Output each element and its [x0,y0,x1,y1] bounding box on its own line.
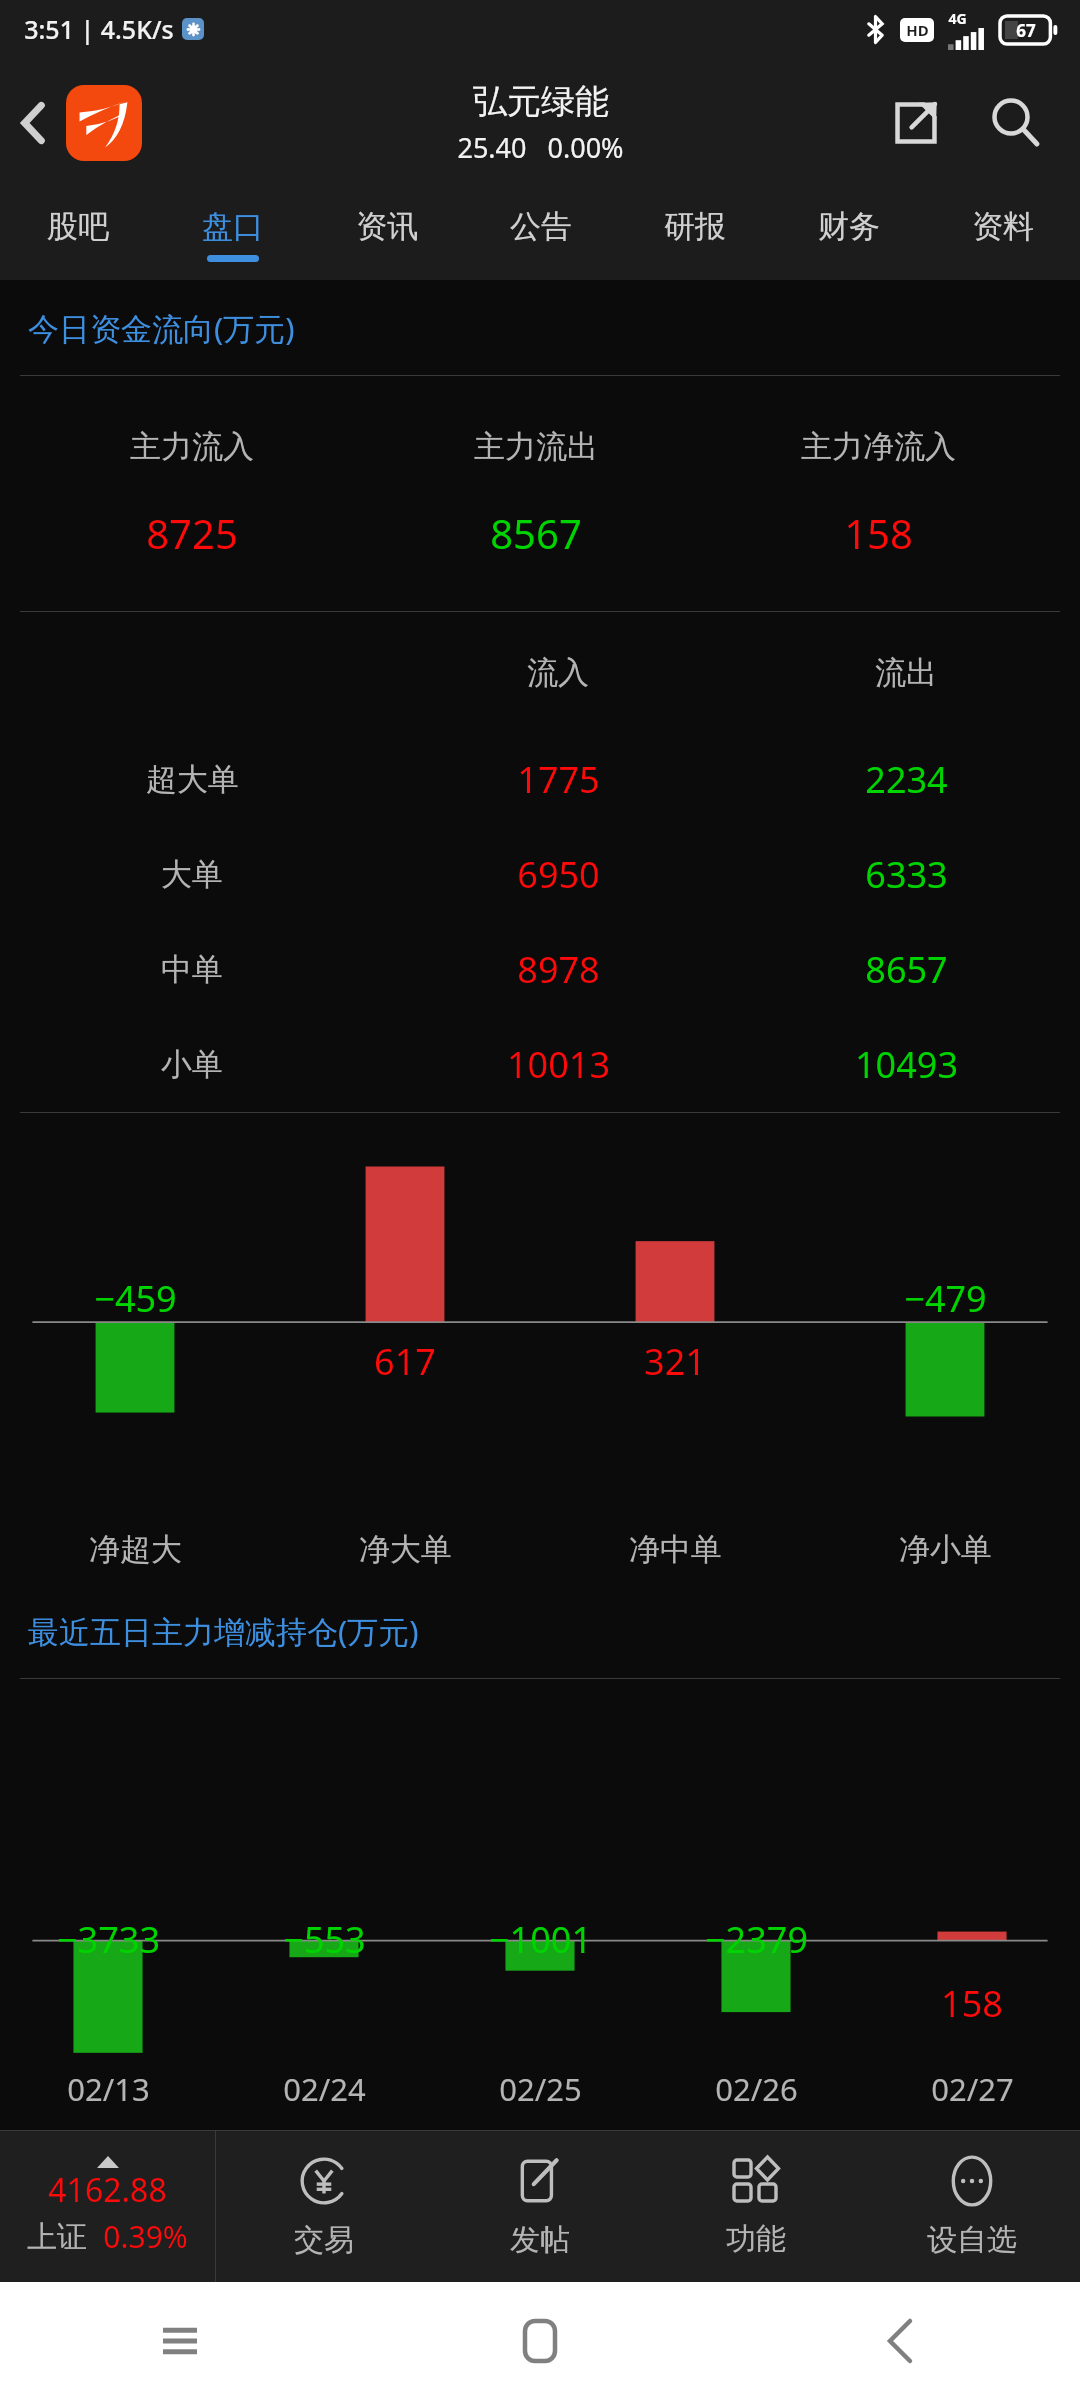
staticText: 8567 [490,506,582,560]
staticText: 6333 [865,850,948,899]
staticText: 公告 [510,207,572,246]
staticText: 4G [948,9,967,28]
staticText: 盘口 [202,207,264,246]
button[interactable]: 资料 [926,188,1080,280]
staticText: 617 [374,1337,436,1386]
staticText: 67 [1016,19,1036,42]
button[interactable]: 资讯 [310,188,464,280]
staticText: 上证 [27,2218,87,2256]
staticText: 财务 [818,207,880,246]
staticText: 10493 [855,1040,958,1089]
staticText: 资讯 [356,207,418,246]
staticText: 今日资金流向(万元) [28,307,295,349]
button[interactable]: Search [982,89,1050,157]
button[interactable]: Back [720,2282,1080,2400]
staticText: 1775 [517,755,600,804]
staticText: 功能 [726,2220,786,2258]
staticText: −459 [94,1274,177,1323]
staticText: 净中单 [629,1530,722,1569]
button[interactable]: 交易 [216,2131,432,2282]
staticText: 流入 [527,653,589,692]
button[interactable]: 4162.88 [0,2131,215,2282]
staticText: −2379 [705,1915,808,1964]
staticText: −553 [283,1915,366,1964]
staticText: 321 [644,1337,706,1386]
staticText: 研报 [664,207,726,246]
button[interactable]: Recents [0,2282,360,2400]
staticText: 10013 [507,1040,610,1089]
staticText: 净大单 [359,1530,452,1569]
staticText: −3733 [57,1915,160,1964]
staticText: 设自选 [927,2221,1017,2259]
staticText: 8978 [517,945,600,994]
staticText: 3:51 | 4.5K/s [24,12,174,46]
staticText: 8725 [146,506,238,560]
staticText: 158 [844,506,913,560]
staticText: 02/25 [499,2068,582,2110]
button[interactable]: 设自选 [864,2131,1080,2282]
staticText: 02/27 [931,2068,1014,2110]
staticText: 发帖 [510,2221,570,2259]
staticText: −479 [904,1274,987,1323]
button[interactable]: Back [0,58,66,188]
button[interactable]: Share [884,91,948,155]
staticText: HD [906,20,929,40]
staticText: 02/13 [67,2068,150,2110]
staticText: 弘元绿能 [473,80,609,123]
button[interactable]: App logo [66,85,142,161]
button[interactable]: 功能 [648,2131,864,2282]
staticText: 最近五日主力增减持仓(万元) [28,1610,419,1652]
staticText: 2234 [865,755,948,804]
staticText: 4162.88 [48,2168,167,2212]
staticText: 主力流出 [474,427,598,466]
button[interactable]: 公告 [464,188,618,280]
staticText: 02/24 [283,2068,366,2110]
staticText: 158 [941,1979,1003,2028]
staticText: 02/26 [715,2068,798,2110]
staticText: 6950 [517,850,600,899]
button[interactable]: 财务 [772,188,926,280]
staticText: 25.40 0.00% [457,129,624,166]
button[interactable]: 研报 [618,188,772,280]
staticText: 净超大 [89,1530,182,1569]
staticText: 净小单 [899,1530,992,1569]
staticText: 流出 [875,653,937,692]
staticText: 小单 [161,1045,223,1084]
staticText: −1001 [489,1915,592,1964]
staticText: 资料 [972,207,1034,246]
staticText: 交易 [294,2221,354,2259]
staticText: 主力净流入 [801,427,956,466]
staticText: 主力流入 [130,427,254,466]
staticText: 超大单 [146,760,239,799]
button[interactable]: 盘口 [155,188,310,280]
staticText: 股吧 [47,207,109,246]
staticText: 8657 [865,945,948,994]
staticText: 中单 [161,950,223,989]
staticText: 0.39% [103,2216,188,2257]
staticText: 大单 [161,855,223,894]
button[interactable]: 股吧 [0,188,155,280]
button[interactable]: Home [360,2282,720,2400]
button[interactable]: 发帖 [432,2131,648,2282]
